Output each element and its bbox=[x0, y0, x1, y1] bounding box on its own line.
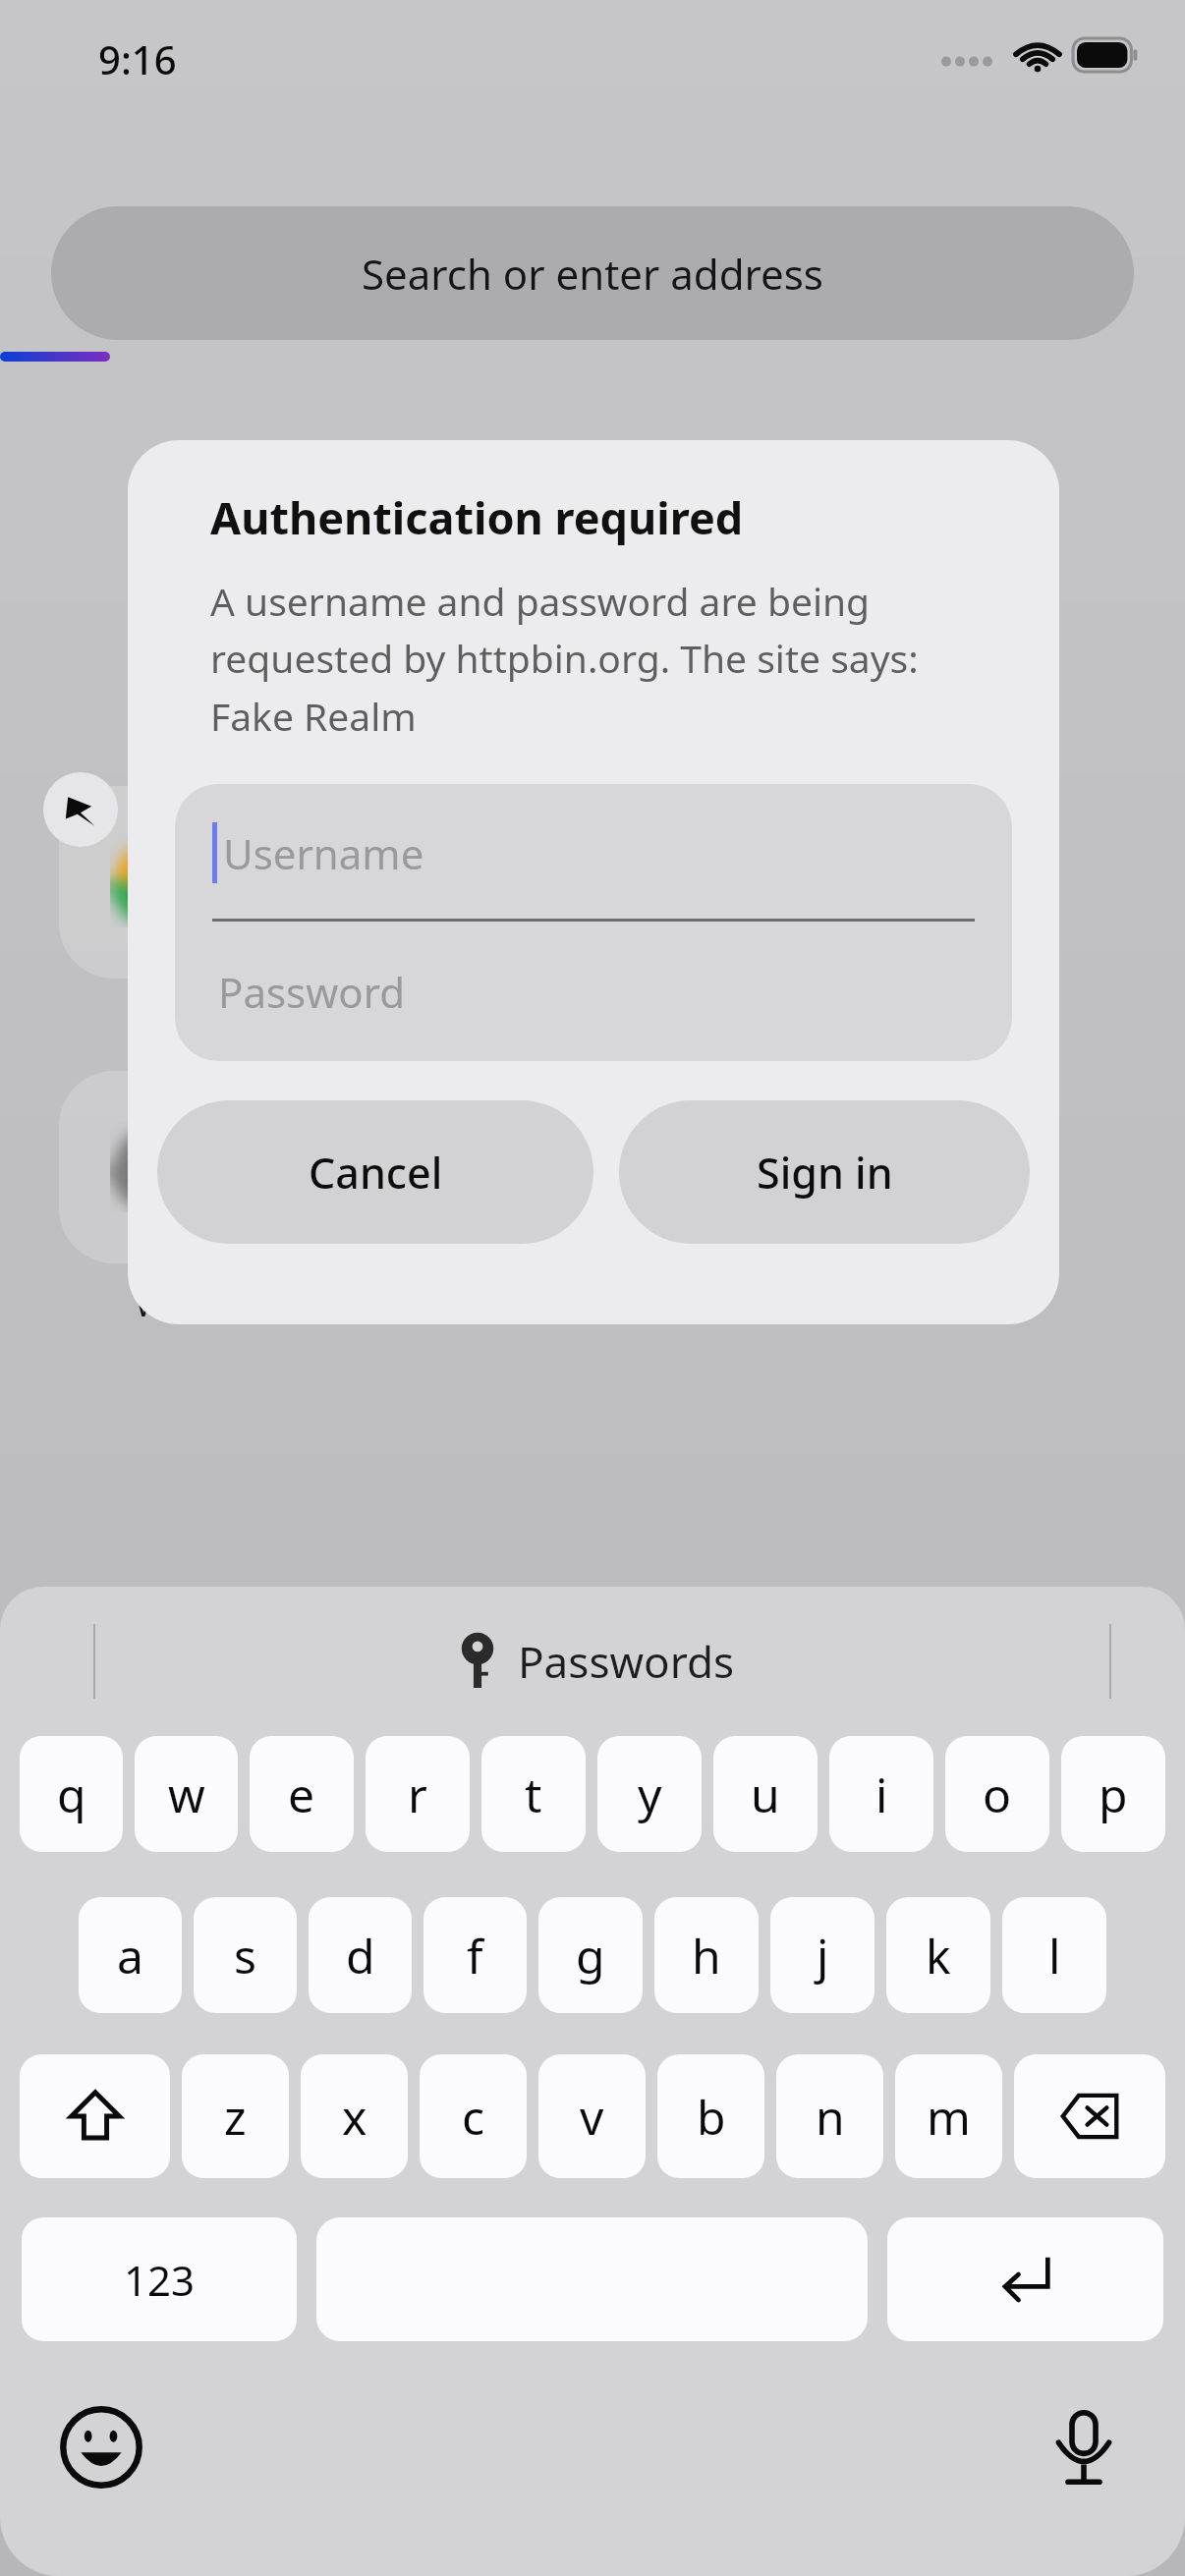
staticText: f bbox=[467, 1924, 483, 1988]
staticText: w bbox=[168, 1763, 205, 1826]
button[interactable]: a bbox=[79, 1897, 182, 2013]
staticText: x bbox=[342, 2085, 367, 2149]
button[interactable]: w bbox=[135, 1736, 238, 1852]
button[interactable]: key bbox=[451, 1632, 735, 1691]
staticText: g bbox=[576, 1924, 605, 1988]
staticText: s bbox=[234, 1924, 256, 1988]
staticText: Sign in bbox=[757, 1144, 893, 1202]
button[interactable]: s bbox=[194, 1897, 297, 2013]
button[interactable]: p bbox=[1061, 1736, 1165, 1852]
button[interactable]: v bbox=[538, 2054, 646, 2178]
button[interactable]: i bbox=[829, 1736, 933, 1852]
button[interactable]: j bbox=[770, 1897, 875, 2013]
button[interactable]: x bbox=[301, 2054, 408, 2178]
staticText: Wi bbox=[135, 1279, 177, 1327]
staticText: l bbox=[1048, 1924, 1061, 1988]
staticText: a bbox=[117, 1924, 143, 1988]
button[interactable]: 123 bbox=[22, 2217, 297, 2341]
staticText: r bbox=[408, 1763, 427, 1826]
button[interactable]: m bbox=[895, 2054, 1002, 2178]
button[interactable]: y bbox=[597, 1736, 702, 1852]
button[interactable] bbox=[59, 1071, 252, 1263]
staticText: p bbox=[1099, 1763, 1128, 1826]
button[interactable]: d bbox=[309, 1897, 412, 2013]
button[interactable]: g bbox=[538, 1897, 643, 2013]
button[interactable]: o bbox=[945, 1736, 1049, 1852]
button[interactable]: r bbox=[366, 1736, 470, 1852]
button[interactable]: Voice input bbox=[1030, 2393, 1138, 2501]
staticText: d bbox=[346, 1924, 375, 1988]
button[interactable]: t bbox=[481, 1736, 586, 1852]
staticText: Authentication required bbox=[210, 487, 744, 547]
button[interactable]: Emoji bbox=[47, 2393, 155, 2501]
button[interactable] bbox=[590, 786, 782, 979]
button[interactable]: Search or enter address bbox=[51, 206, 1134, 340]
staticText: b bbox=[697, 2085, 726, 2149]
staticText: c bbox=[462, 2085, 485, 2149]
button[interactable]: k bbox=[886, 1897, 990, 2013]
staticText: Password bbox=[218, 964, 405, 1020]
staticText: Cancel bbox=[309, 1144, 443, 1202]
button[interactable]: Backspace bbox=[1014, 2054, 1165, 2178]
button[interactable]: u bbox=[713, 1736, 818, 1852]
button[interactable] bbox=[324, 1071, 517, 1263]
button[interactable]: q bbox=[20, 1736, 123, 1852]
button[interactable]: b bbox=[657, 2054, 764, 2178]
staticText: i bbox=[875, 1763, 888, 1826]
button[interactable]: c bbox=[420, 2054, 527, 2178]
button[interactable] bbox=[865, 786, 1057, 979]
button[interactable]: Space bbox=[316, 2217, 868, 2341]
staticText: A username and password are being reques… bbox=[210, 575, 990, 743]
other: key bbox=[451, 1635, 504, 1688]
staticText: u bbox=[751, 1763, 780, 1826]
staticText: Passwords bbox=[518, 1632, 735, 1691]
staticText: z bbox=[224, 2085, 247, 2149]
staticText: e bbox=[288, 1763, 315, 1826]
staticText: 9:16 bbox=[98, 32, 177, 85]
button[interactable]: Password bbox=[175, 922, 1012, 1061]
button[interactable]: Shift bbox=[20, 2054, 170, 2178]
button[interactable]: Sign in bbox=[619, 1100, 1030, 1244]
staticText: o bbox=[983, 1763, 1012, 1826]
button[interactable]: n bbox=[776, 2054, 883, 2178]
button[interactable]: f bbox=[423, 1897, 527, 2013]
staticText: n bbox=[816, 2085, 845, 2149]
staticText: m bbox=[927, 2085, 971, 2149]
staticText: v bbox=[580, 2085, 604, 2149]
button[interactable]: z bbox=[182, 2054, 289, 2178]
button[interactable]: Enter bbox=[887, 2217, 1163, 2341]
staticText: h bbox=[692, 1924, 721, 1988]
staticText: q bbox=[57, 1763, 86, 1826]
button[interactable]: h bbox=[654, 1897, 759, 2013]
button[interactable]: e bbox=[250, 1736, 354, 1852]
button[interactable]: Cancel bbox=[157, 1100, 593, 1244]
staticText: y bbox=[638, 1763, 662, 1826]
staticText: Search or enter address bbox=[362, 246, 823, 302]
staticText: t bbox=[525, 1763, 542, 1826]
staticText: j bbox=[817, 1924, 829, 1988]
button[interactable]: l bbox=[1002, 1897, 1106, 2013]
button[interactable]: Username bbox=[175, 784, 1012, 922]
staticText: Username bbox=[223, 825, 424, 881]
button[interactable] bbox=[59, 786, 252, 979]
staticText: k bbox=[926, 1924, 951, 1988]
button[interactable] bbox=[324, 786, 517, 979]
staticText: 123 bbox=[124, 2252, 196, 2308]
